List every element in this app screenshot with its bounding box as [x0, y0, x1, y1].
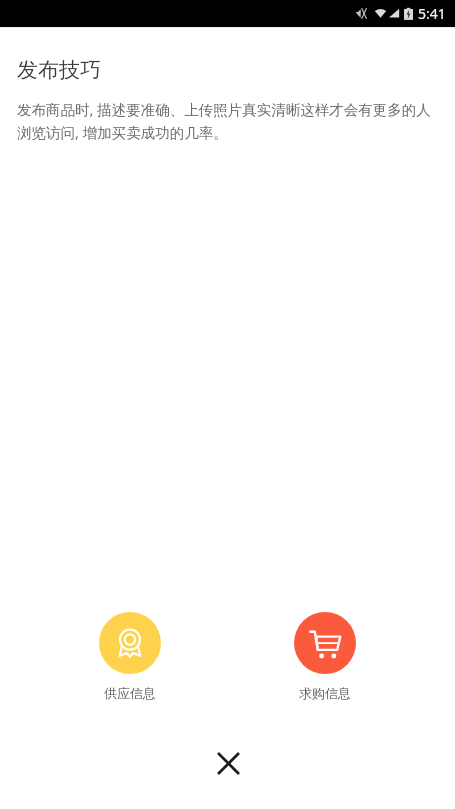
- staticText: 5:41: [418, 4, 446, 23]
- staticText: 供应信息: [104, 685, 156, 701]
- button[interactable]: 供应信息: [93, 610, 167, 703]
- staticText: 发布商品时, 描述要准确、上传照片真实清晰这样才会有更多的人浏览访问, 增加买卖…: [17, 99, 436, 142]
- button[interactable]: 求购信息: [288, 610, 362, 703]
- staticText: 求购信息: [299, 685, 351, 701]
- staticText: 发布技巧: [17, 57, 101, 83]
- button[interactable]: 关闭: [205, 740, 251, 786]
